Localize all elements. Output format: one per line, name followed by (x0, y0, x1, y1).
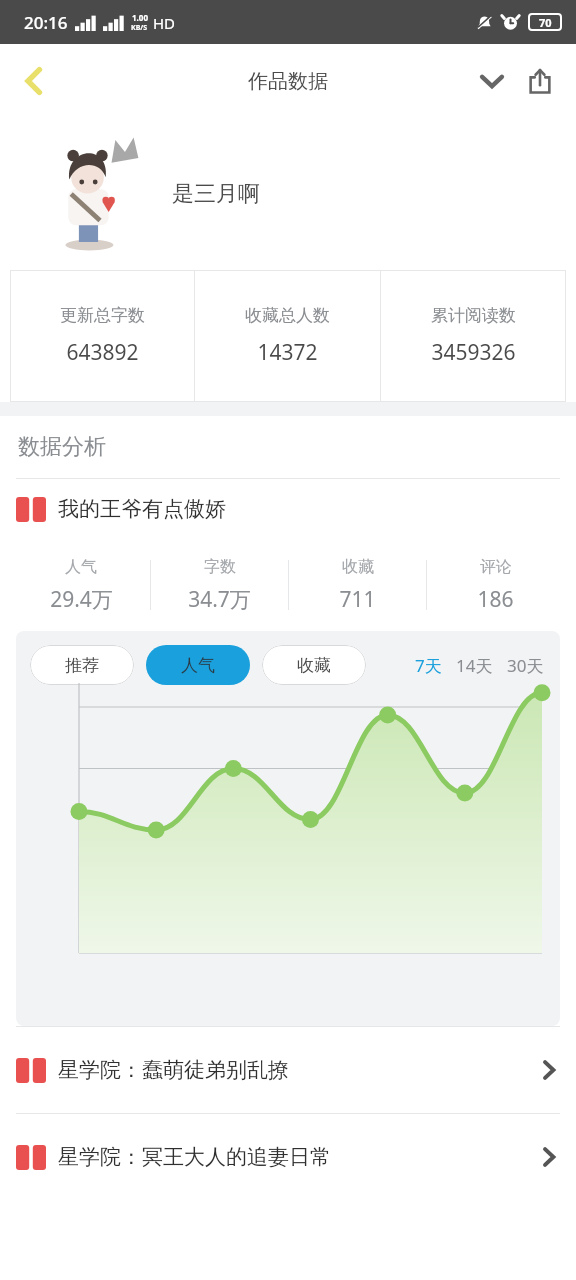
staticText: 星学院：蠢萌徒弟别乱撩 (58, 1057, 289, 1083)
staticText: 数据分析 (18, 433, 106, 461)
button[interactable]: 我的王爷有点傲娇 (16, 479, 576, 539)
staticText: 186 (477, 585, 514, 614)
button[interactable]: 人气 (146, 645, 250, 685)
staticText: 643892 (66, 338, 139, 367)
staticText: 收藏总人数 (245, 305, 330, 326)
staticText: 作品数据 (248, 69, 328, 94)
button[interactable]: 30天 (505, 648, 546, 683)
button[interactable]: 人气 (12, 557, 150, 614)
button[interactable]: 累计阅读数 (381, 270, 566, 402)
button[interactable]: 星学院：冥王大人的追妻日常 (16, 1114, 560, 1200)
button[interactable]: 收藏 (289, 557, 426, 614)
button[interactable]: 更新总字数 (10, 270, 194, 402)
staticText: 星学院：冥王大人的追妻日常 (58, 1144, 331, 1170)
button[interactable]: Expand (468, 57, 516, 105)
button[interactable]: 推荐 (30, 645, 134, 685)
button[interactable]: 收藏 (262, 645, 366, 685)
staticText: 人气 (181, 655, 215, 676)
staticText: 70 (539, 15, 552, 30)
staticText: 推荐 (65, 655, 99, 676)
staticText: 14天 (456, 654, 493, 677)
button[interactable]: 是三月啊 (0, 118, 576, 270)
button[interactable]: 14天 (454, 648, 495, 683)
staticText: 7天 (415, 654, 442, 677)
staticText: 29.4万 (50, 585, 113, 614)
button[interactable]: Back (8, 55, 60, 107)
staticText: HD (153, 13, 176, 33)
staticText: 人气 (65, 557, 97, 577)
staticText: 我的王爷有点傲娇 (58, 496, 226, 522)
staticText: 34.7万 (188, 585, 251, 614)
staticText: 评论 (480, 557, 512, 577)
staticText: 711 (339, 585, 376, 614)
staticText: 收藏 (297, 655, 331, 676)
staticText: 更新总字数 (60, 305, 145, 326)
staticText: 3459326 (431, 338, 516, 367)
staticText: KB/S (131, 23, 148, 33)
staticText: 1.00 (132, 12, 148, 23)
staticText: 是三月啊 (172, 180, 260, 208)
staticText: 14372 (257, 338, 318, 367)
staticText: 字数 (204, 557, 236, 577)
button[interactable]: 7天 (413, 648, 444, 683)
staticText: 收藏 (342, 557, 374, 577)
button[interactable]: 评论 (427, 557, 564, 614)
button[interactable]: 收藏总人数 (195, 270, 380, 402)
staticText: 累计阅读数 (431, 305, 516, 326)
staticText: 30天 (507, 654, 544, 677)
staticText: 20:16 (24, 11, 68, 34)
button[interactable]: 星学院：蠢萌徒弟别乱撩 (16, 1027, 560, 1113)
button[interactable]: 字数 (151, 557, 288, 614)
button[interactable]: Share (516, 57, 564, 105)
